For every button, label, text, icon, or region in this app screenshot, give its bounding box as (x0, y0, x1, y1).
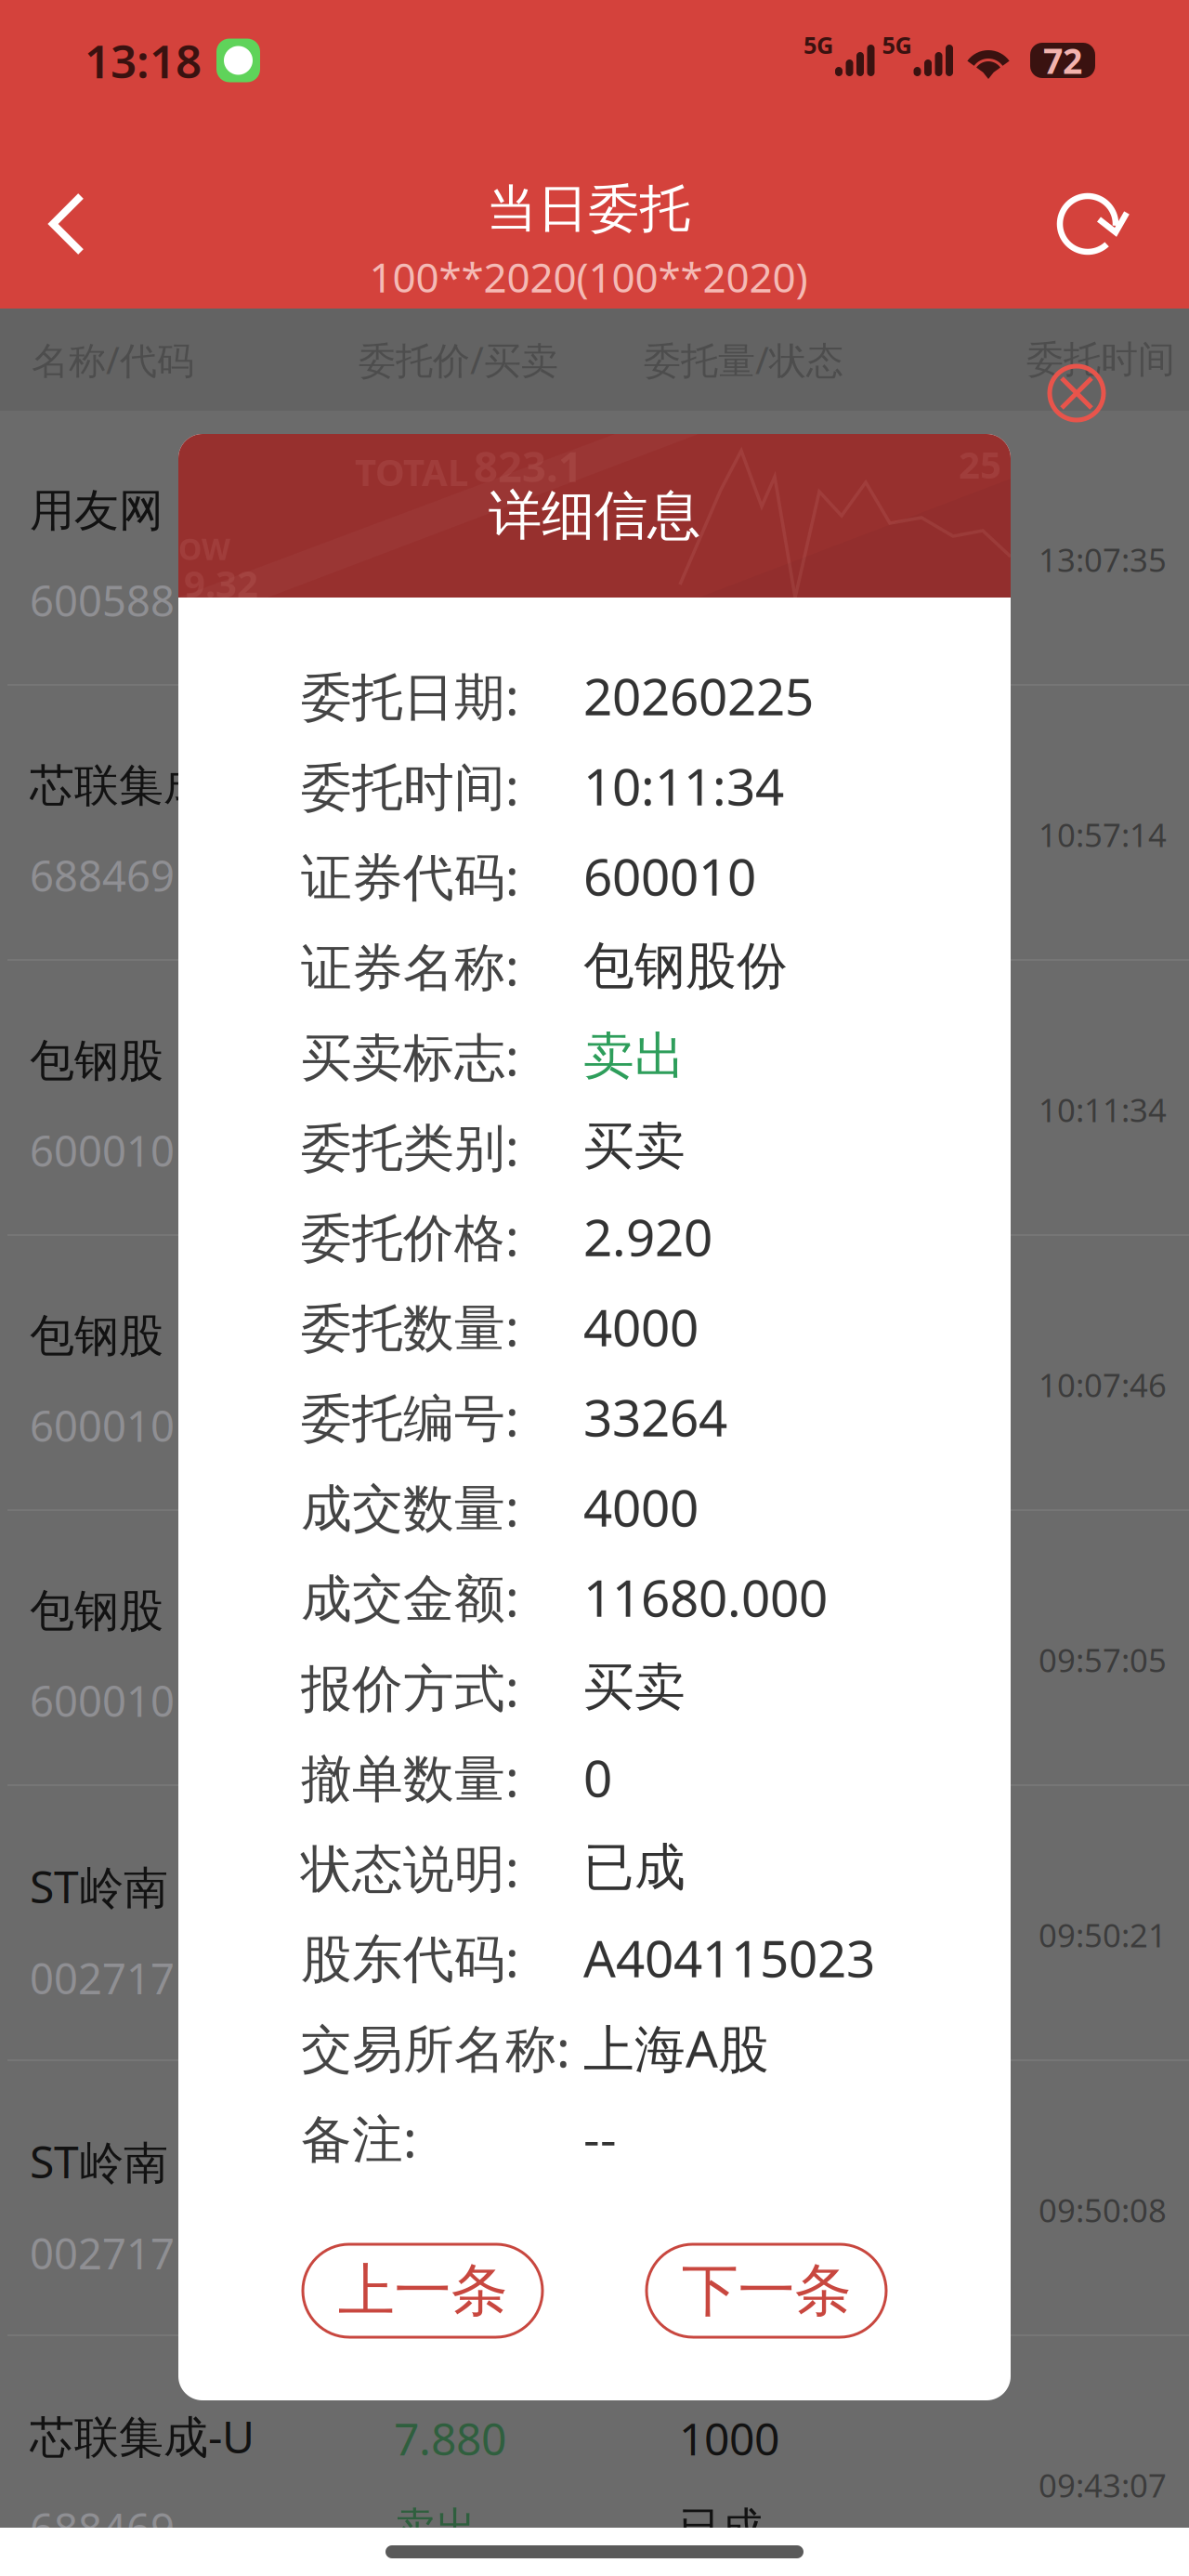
staticText: 芯联集成 (30, 758, 208, 813)
staticText: 芯联集成-U (30, 2406, 255, 2466)
staticText: 9.32 (184, 559, 258, 608)
staticText: 5G (804, 29, 833, 60)
staticText: 10:57:14 (1039, 813, 1167, 856)
staticText: 已成 (679, 2502, 763, 2554)
staticText: 买卖 (583, 1656, 686, 1718)
staticText: 委托时间: (301, 752, 519, 819)
staticText: 下一条 (681, 2256, 851, 2326)
staticText: 600010 (30, 1398, 175, 1454)
staticText: 600588 (30, 572, 175, 628)
staticText: 委托价/买卖 (359, 335, 558, 384)
button[interactable]: 刷新 (1043, 174, 1145, 256)
staticText: 委托价格: (301, 1203, 519, 1270)
staticText: 包钢股 (30, 1308, 163, 1363)
staticText: 成交金额: (301, 1563, 519, 1631)
staticText: 7.880 (394, 2409, 506, 2468)
staticText: 4000 (583, 1473, 699, 1541)
staticText: 委托编号: (301, 1383, 519, 1450)
staticText: 用友网 (30, 483, 163, 538)
staticText: 上海A股 (583, 2014, 769, 2081)
button[interactable]: 关闭 (1050, 366, 1104, 420)
staticText: 卖出 (394, 2502, 477, 2554)
staticText: 备注: (301, 2104, 417, 2172)
staticText: 交易所名称: (301, 2014, 570, 2081)
staticText: OW (178, 529, 230, 568)
staticText: 5G (882, 29, 912, 60)
staticText: 600010 (583, 842, 756, 910)
staticText: 10:11:34 (1039, 1088, 1167, 1131)
staticText: 09:57:05 (1039, 1638, 1167, 1681)
staticText: 详细信息 (489, 483, 700, 548)
staticText: 包钢股 (30, 1033, 163, 1088)
staticText: 72 (1043, 37, 1082, 83)
staticText: 成交数量: (301, 1473, 519, 1541)
staticText: 09:43:07 (1039, 2464, 1167, 2506)
staticText: 13:07:35 (1039, 538, 1167, 581)
staticText: 25 (959, 440, 1001, 489)
staticText: 823.1 (474, 438, 582, 494)
staticText: 已成 (583, 1836, 686, 1899)
staticText: 11680.000 (583, 1563, 828, 1631)
staticText: 委托量/状态 (644, 335, 843, 384)
staticText: 10:11:34 (583, 752, 784, 819)
staticText: ST岭南 (30, 2131, 168, 2191)
staticText: ST岭南 (30, 1856, 168, 1916)
staticText: 包钢股 (30, 1583, 163, 1638)
staticText: TOTAL (355, 447, 468, 496)
staticText: 委托数量: (301, 1293, 519, 1360)
staticText: 2.920 (583, 1203, 712, 1270)
staticText: 688469 (30, 847, 175, 903)
staticText: 证券名称: (301, 932, 519, 1000)
staticText: 股东代码: (301, 1924, 519, 1991)
staticText: 600010 (30, 1673, 175, 1729)
staticText: 10:07:46 (1039, 1363, 1167, 1406)
staticText: 4000 (583, 1293, 699, 1360)
staticText: 委托时间 (1026, 337, 1175, 382)
staticText: 上一条 (338, 2256, 508, 2326)
staticText: 状态说明: (301, 1834, 519, 1901)
staticText: 报价方式: (301, 1653, 519, 1721)
staticText: 600010 (30, 1122, 175, 1178)
staticText: 证券代码: (301, 842, 519, 910)
staticText: 买卖标志: (301, 1022, 519, 1090)
staticText: 买卖 (583, 1115, 686, 1177)
staticText: A404115023 (583, 1924, 875, 1991)
staticText: 当日委托 (486, 178, 691, 240)
staticText: 09:50:21 (1039, 1913, 1167, 1956)
staticText: 20260225 (583, 662, 814, 729)
button[interactable]: 上一条 (303, 2244, 542, 2337)
staticText: 委托日期: (301, 662, 519, 729)
staticText: -- (583, 2104, 617, 2172)
staticText: 100**2020(100**2020) (369, 249, 808, 304)
staticText: 002717 (30, 1950, 175, 2006)
staticText: 002717 (30, 2225, 175, 2281)
staticText: 委托类别: (301, 1113, 519, 1180)
button[interactable]: 返回 (30, 167, 104, 262)
staticText: 13:18 (85, 30, 202, 91)
staticText: 33264 (583, 1383, 727, 1450)
staticText: 卖出 (583, 1025, 686, 1087)
staticText: 688469 (30, 2500, 175, 2556)
staticText: 撤单数量: (301, 1744, 519, 1811)
staticText: 1000 (679, 2409, 779, 2468)
staticText: 名称/代码 (32, 335, 194, 384)
button[interactable]: 下一条 (647, 2244, 886, 2337)
staticText: 09:50:08 (1039, 2188, 1167, 2231)
staticText: 包钢股份 (583, 935, 788, 997)
staticText: 0 (583, 1744, 612, 1811)
